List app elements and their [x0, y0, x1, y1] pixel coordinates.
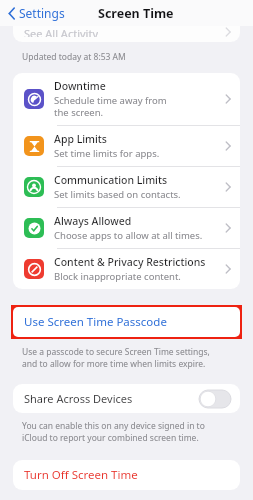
staticText: Use Screen Time Passcode [24, 314, 167, 330]
button[interactable]: Downtime [13, 73, 240, 125]
staticText: Block inappropriate content. [54, 270, 181, 283]
staticText: Content & Privacy Restrictions [54, 255, 206, 269]
staticText: Communication Limits [54, 173, 168, 187]
staticText: Set limits based on contacts. [54, 188, 181, 201]
staticText: Settings [19, 5, 65, 21]
staticText: Always Allowed [54, 214, 132, 228]
staticText: Turn Off Screen Time [24, 467, 138, 483]
staticText: App Limits [54, 132, 107, 146]
staticText: Schedule time away from the screen. [54, 94, 167, 119]
button[interactable]: See All Activity [13, 26, 240, 42]
button[interactable]: Settings [6, 3, 67, 23]
button[interactable]: Turn Off Screen Time [13, 460, 240, 490]
button[interactable]: Share Across Devices toggle [199, 390, 231, 408]
staticText: You can enable this on any device signed… [22, 420, 205, 444]
button[interactable]: Use Screen Time Passcode [13, 307, 240, 337]
staticText: Screen Time [98, 5, 174, 22]
button[interactable]: App Limits [13, 126, 240, 166]
staticText: Choose apps to allow at all times. [54, 229, 203, 242]
button[interactable]: Share Across Devices [13, 384, 240, 413]
staticText: Use a passcode to secure Screen Time set… [22, 346, 210, 370]
button[interactable]: Content & Privacy Restrictions [13, 249, 240, 289]
button[interactable]: Always Allowed [13, 208, 240, 248]
staticText: Share Across Devices [24, 391, 133, 406]
staticText: Updated today at 8:53 AM [22, 51, 126, 63]
staticText: Set time limits for apps. [54, 147, 160, 160]
staticText: Downtime [54, 79, 106, 93]
button[interactable]: Communication Limits [13, 167, 240, 207]
staticText: See All Activity [24, 26, 98, 37]
